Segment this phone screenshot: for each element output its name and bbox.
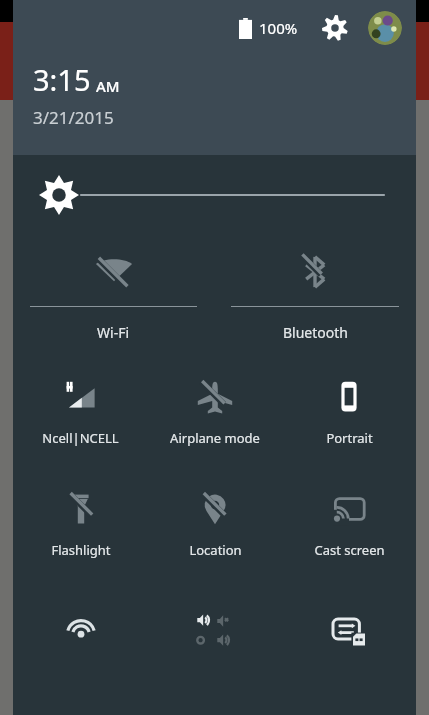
button[interactable]: Location <box>148 475 282 587</box>
staticText: Flashlight <box>51 541 111 559</box>
staticText: Bluetooth <box>283 323 348 342</box>
staticText: Cast screen <box>314 541 385 559</box>
button[interactable]: User profile <box>368 11 402 45</box>
staticText: 3/21/2015 <box>33 106 114 129</box>
button[interactable]: Sound mode <box>148 587 282 715</box>
button[interactable]: Flashlight <box>13 475 148 587</box>
button[interactable]: Portrait <box>282 363 416 475</box>
staticText: Portrait <box>326 429 373 447</box>
button[interactable]: Brightness <box>13 155 416 235</box>
button[interactable]: Hotspot <box>13 587 148 715</box>
staticText: Wi-Fi <box>97 323 130 342</box>
button[interactable]: Cast screen <box>282 475 416 587</box>
button[interactable]: Wi-Fi <box>13 235 214 363</box>
button[interactable]: Switch data <box>282 587 416 715</box>
staticText: AM <box>96 76 120 96</box>
staticText: Airplane mode <box>170 429 260 447</box>
staticText: Location <box>189 541 242 559</box>
button[interactable]: Airplane mode <box>148 363 282 475</box>
button[interactable]: Settings <box>318 11 352 45</box>
button[interactable]: Ncell|NCELL <box>13 363 148 475</box>
staticText: 3:15 <box>33 60 91 99</box>
staticText: 100% <box>259 18 298 38</box>
button[interactable]: Bluetooth <box>214 235 416 363</box>
staticText: Ncell|NCELL <box>42 429 119 447</box>
